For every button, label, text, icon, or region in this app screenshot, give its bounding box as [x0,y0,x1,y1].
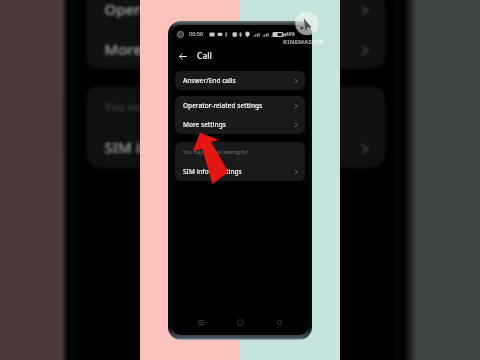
staticText: KINEMASTER [283,38,324,46]
staticText: Operator-related settings [183,101,263,110]
staticText: Operator-related settings [104,0,288,19]
button[interactable]: Answer/End calls [175,71,305,90]
staticText: 48% [286,31,295,37]
button[interactable]: Recent apps [192,313,210,331]
staticText: SIM info & settings [104,139,240,157]
button[interactable]: Operator-related settings [175,96,305,115]
button[interactable]: SIM info & settings [86,128,385,168]
staticText: More settings [104,40,203,59]
staticText: You may also be looking for [104,101,254,115]
button[interactable]: Back [175,48,191,64]
staticText: More settings [183,120,226,129]
staticText: You may also be looking for [183,149,248,156]
button[interactable]: More settings [86,29,385,69]
staticText: Answer/End calls [183,76,236,85]
staticText: 00:56 [189,30,204,37]
button[interactable]: More settings [175,115,305,134]
button[interactable]: Back [270,313,288,331]
staticText: Call [197,50,212,62]
button[interactable]: SIM info & settings [175,162,305,181]
button[interactable]: Home [231,313,249,331]
staticText: SIM info & settings [183,167,242,176]
button[interactable]: Operator-related settings [86,0,385,29]
